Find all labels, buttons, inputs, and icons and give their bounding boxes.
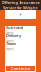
staticText: item [6, 30, 14, 35]
staticText: Service for Weight [3, 5, 38, 10]
staticText: item [6, 46, 14, 51]
staticText: Delivery [6, 33, 21, 38]
staticText: item [6, 38, 14, 43]
staticText: Continue [11, 66, 30, 71]
staticText: Offering Insurance [1, 0, 39, 5]
staticText: Subtotal [6, 25, 23, 30]
button[interactable]: Continue [6, 66, 35, 71]
staticText: Taxes [6, 41, 16, 46]
